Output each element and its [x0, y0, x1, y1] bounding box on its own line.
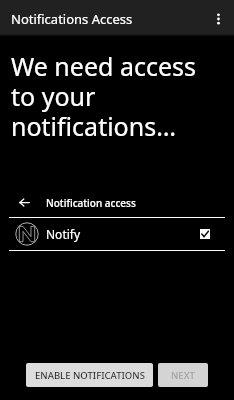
staticText: NEXT [171, 369, 195, 382]
staticText: We need access to your notifications… [11, 49, 211, 143]
button[interactable]: Back [10, 188, 39, 217]
staticText: ENABLE NOTIFICATIONS [35, 369, 145, 382]
button[interactable]: More options [202, 3, 234, 35]
button[interactable]: ENABLE NOTIFICATIONS [26, 363, 153, 387]
staticText: Notifications Access [11, 10, 133, 28]
button[interactable]: Notify [0, 218, 234, 250]
button[interactable]: NEXT [158, 363, 208, 387]
staticText: Notification access [46, 196, 136, 210]
staticText: Notify [46, 226, 81, 242]
